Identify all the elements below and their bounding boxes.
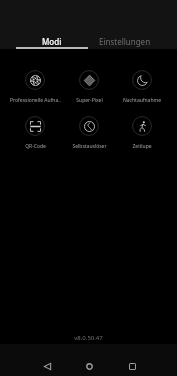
button[interactable]: Back [36,355,58,376]
button[interactable]: Modi [16,0,88,49]
staticText: Modi [42,36,62,47]
staticText: Selbstauslöser [72,143,107,150]
button[interactable]: Selbstauslöser [58,114,120,150]
staticText: Super-Pixel [76,97,103,104]
button[interactable]: Nachtaufnahme [111,68,173,104]
button[interactable]: QR-Code [4,114,66,150]
staticText: Einstellungen [99,36,151,47]
button[interactable]: Home [78,355,100,376]
button[interactable]: Recents [121,355,143,376]
staticText: v8.0.50.47 [0,334,177,342]
staticText: Zeitlupe [132,143,152,150]
button[interactable]: Zeitlupe [111,114,173,150]
button[interactable]: Einstellungen [88,0,161,49]
staticText: Professionelle Aufna.. [10,97,61,104]
button[interactable]: Professionelle Aufna.. [4,68,66,104]
button[interactable]: Super-Pixel [58,68,120,104]
staticText: Nachtaufnahme [123,97,161,104]
staticText: QR-Code [25,143,46,150]
